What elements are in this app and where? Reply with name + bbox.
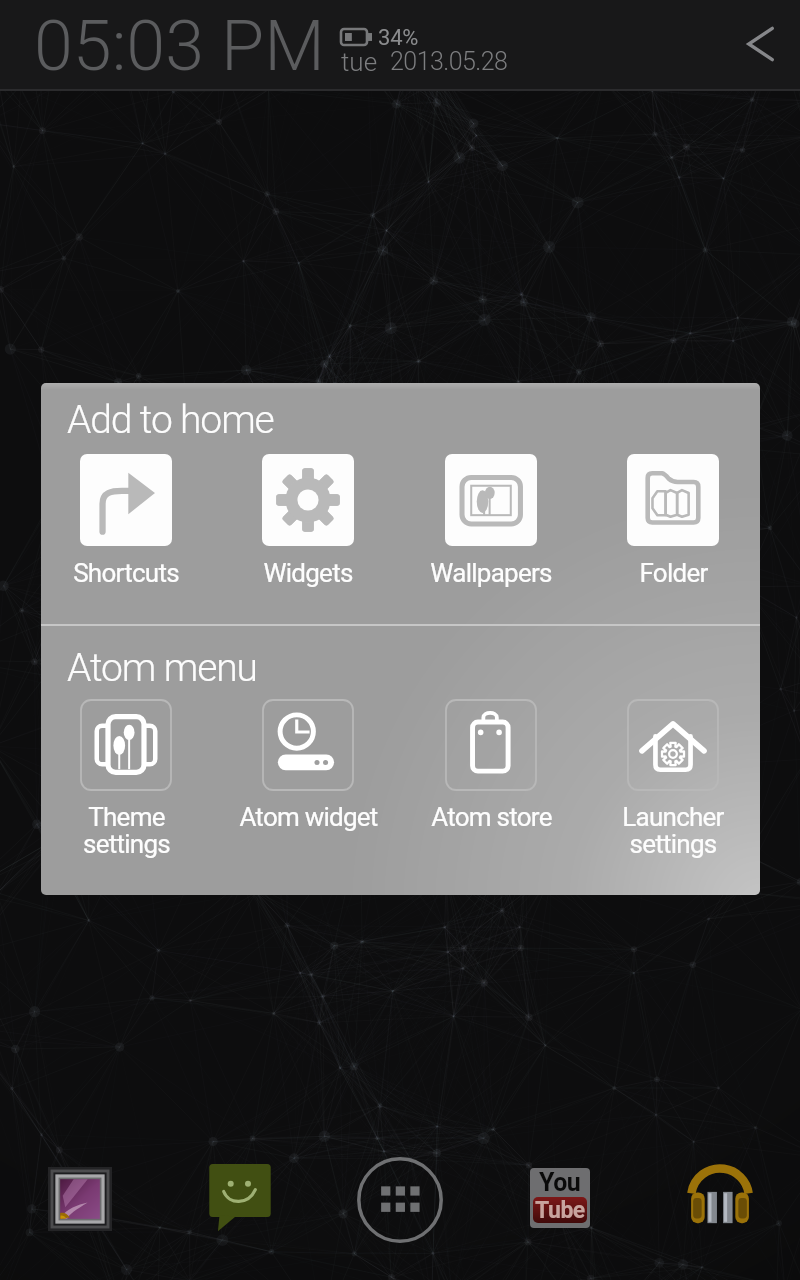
staticText: Tube xyxy=(535,1197,585,1223)
button[interactable]: Atom store xyxy=(416,700,566,832)
staticText: 2013.05.28 xyxy=(390,47,508,76)
button[interactable]: Gallery xyxy=(30,1149,130,1249)
button[interactable]: Atom widget xyxy=(233,700,383,832)
staticText: Atom menu xyxy=(67,645,257,691)
staticText: Wallpapers xyxy=(430,558,552,588)
staticText: Atom widget xyxy=(239,802,378,832)
button[interactable]: Back xyxy=(732,16,788,72)
staticText: Add to home xyxy=(67,397,274,443)
staticText: Widgets xyxy=(263,558,353,588)
button[interactable]: Theme settings xyxy=(51,700,201,859)
staticText: Folder xyxy=(639,558,708,588)
button[interactable]: All apps xyxy=(350,1150,450,1250)
staticText: You xyxy=(539,1168,581,1197)
staticText: tue xyxy=(341,47,378,77)
button[interactable]: YouTube xyxy=(510,1148,610,1248)
staticText: 05:03 PM xyxy=(34,5,325,87)
button[interactable]: Launcher settings xyxy=(598,700,748,859)
staticText: Theme settings xyxy=(83,802,170,859)
staticText: 34% xyxy=(378,25,419,51)
button[interactable]: Wallpapers xyxy=(416,454,566,588)
button[interactable]: Play Music xyxy=(670,1148,770,1248)
staticText: Shortcuts xyxy=(73,558,179,588)
button[interactable]: Shortcuts xyxy=(51,454,201,588)
button[interactable]: Messaging xyxy=(190,1146,290,1246)
staticText: Atom store xyxy=(431,802,552,832)
staticText: Launcher settings xyxy=(622,802,724,859)
button[interactable]: Folder xyxy=(598,454,748,588)
button[interactable]: Widgets xyxy=(233,454,383,588)
